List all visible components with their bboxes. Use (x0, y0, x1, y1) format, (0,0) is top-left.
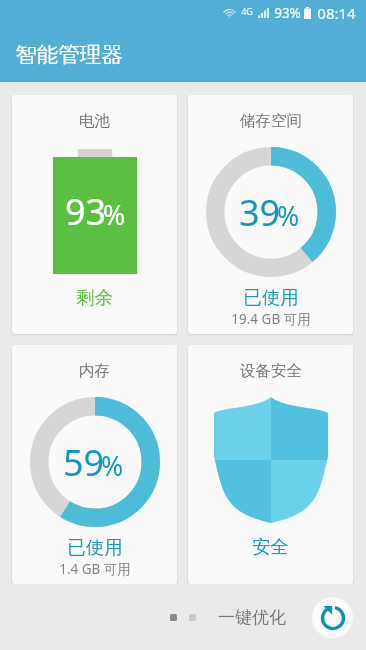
staticText: 电池 (79, 111, 110, 131)
staticText: % (103, 197, 126, 233)
staticText: 设备安全 (240, 361, 302, 381)
staticText: 智能管理器 (15, 41, 123, 68)
staticText: % (101, 448, 124, 484)
staticText: 59 (63, 438, 105, 487)
staticText: 安全 (252, 535, 289, 558)
button[interactable]: 一键优化 (218, 607, 286, 628)
staticText: 已使用 (67, 536, 123, 559)
staticText: 已使用 (243, 286, 299, 309)
staticText: 19.4 GB 可用 (231, 310, 311, 328)
staticText: 93 (65, 187, 107, 236)
staticText: 一键优化 (218, 607, 286, 628)
staticText: 08:14 (317, 3, 356, 23)
staticText: 4G (241, 5, 253, 17)
staticText: 储存空间 (240, 111, 302, 131)
staticText: 93% (274, 4, 301, 22)
button[interactable]: Optimize (312, 597, 353, 638)
staticText: 内存 (79, 361, 110, 381)
staticText: 剩余 (76, 286, 113, 309)
button[interactable]: 设备安全 (188, 345, 353, 584)
staticText: % (277, 198, 300, 234)
button[interactable]: 储存空间 (188, 95, 353, 334)
button[interactable]: 电池 (12, 95, 177, 334)
staticText: 39 (239, 188, 281, 237)
staticText: 1.4 GB 可用 (59, 560, 131, 578)
button[interactable]: 内存 (12, 345, 177, 584)
